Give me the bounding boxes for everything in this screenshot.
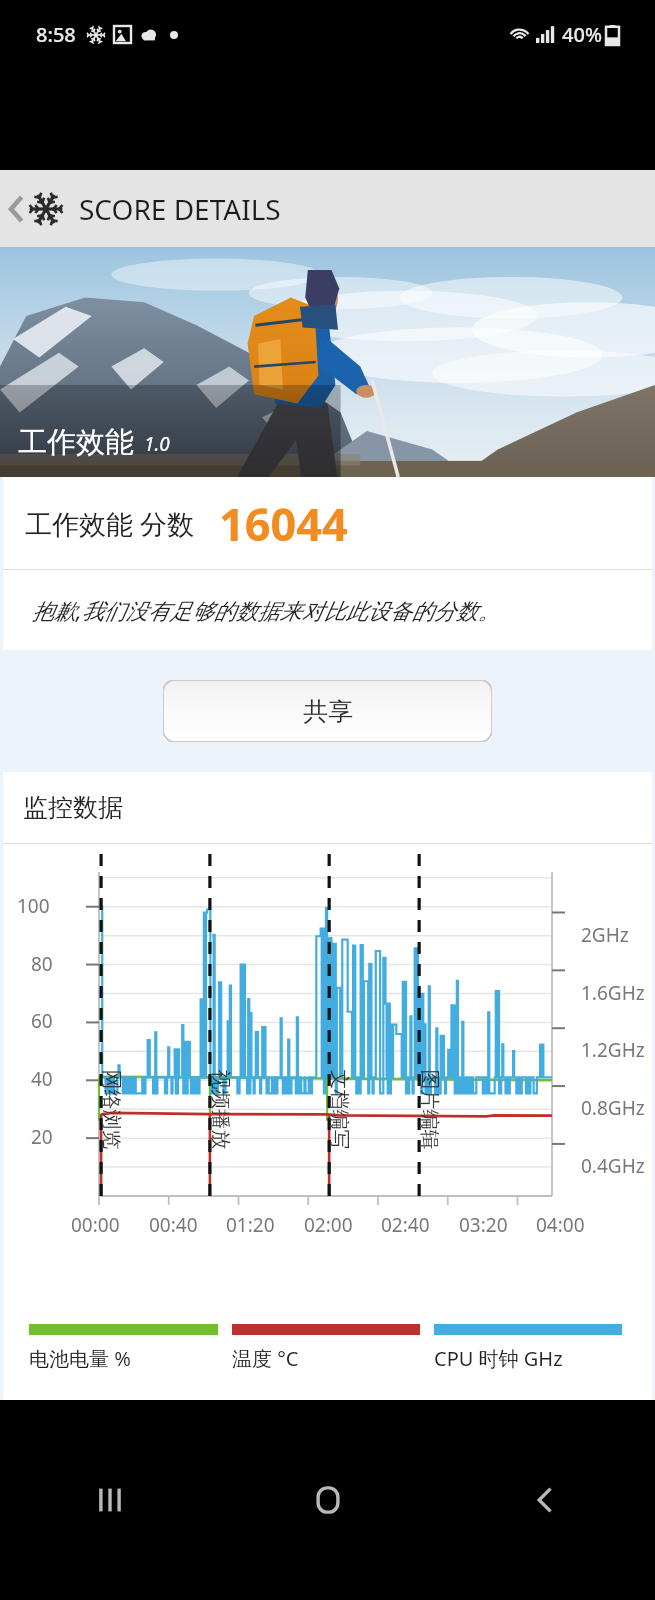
staticText: 20 [31,1124,53,1150]
staticText: 03:20 [459,1212,508,1238]
staticText: 网络浏览 [98,1069,123,1149]
button[interactable]: Recents [0,1400,219,1600]
staticText: 100 [17,893,50,919]
staticText: 40% [562,21,602,48]
staticText: 1.2GHz [581,1037,645,1063]
staticText: 01:20 [226,1212,275,1238]
staticText: 图片编辑 [416,1069,441,1149]
staticText: 2GHz [581,922,629,948]
button[interactable]: Back [0,184,67,234]
staticText: 电池电量 % [29,1345,131,1372]
staticText: 共享 [303,696,353,727]
staticText: 80 [31,951,53,977]
staticText: 02:40 [381,1212,430,1238]
staticText: 温度 °C [232,1345,299,1372]
staticText: 16044 [219,493,348,554]
staticText: 工作效能 [18,424,134,461]
staticText: 工作效能 分数 [25,505,195,542]
staticText: 1.6GHz [581,980,645,1006]
button[interactable]: 共享 [163,680,492,742]
button[interactable]: Back [437,1400,655,1600]
staticText: 文档编写 [326,1069,351,1149]
staticText: 0.4GHz [581,1153,645,1179]
staticText: 00:00 [71,1212,120,1238]
staticText: 60 [31,1008,53,1034]
staticText: 1.0 [144,431,170,457]
staticText: 00:40 [149,1212,198,1238]
button[interactable]: 工作效能 分数 [3,477,652,569]
button[interactable]: Home [219,1400,437,1600]
staticText: 0.8GHz [581,1095,645,1121]
staticText: 抱歉,我们没有足够的数据来对比此设备的分数。 [32,595,500,625]
staticText: 8:58 [36,21,76,48]
staticText: SCORE DETAILS [79,190,281,228]
staticText: 监控数据 [23,792,123,823]
staticText: 04:00 [536,1212,585,1238]
staticText: 40 [31,1066,53,1092]
staticText: 视频播放 [207,1069,232,1149]
staticText: CPU 时钟 GHz [434,1345,563,1372]
staticText: 02:00 [304,1212,353,1238]
